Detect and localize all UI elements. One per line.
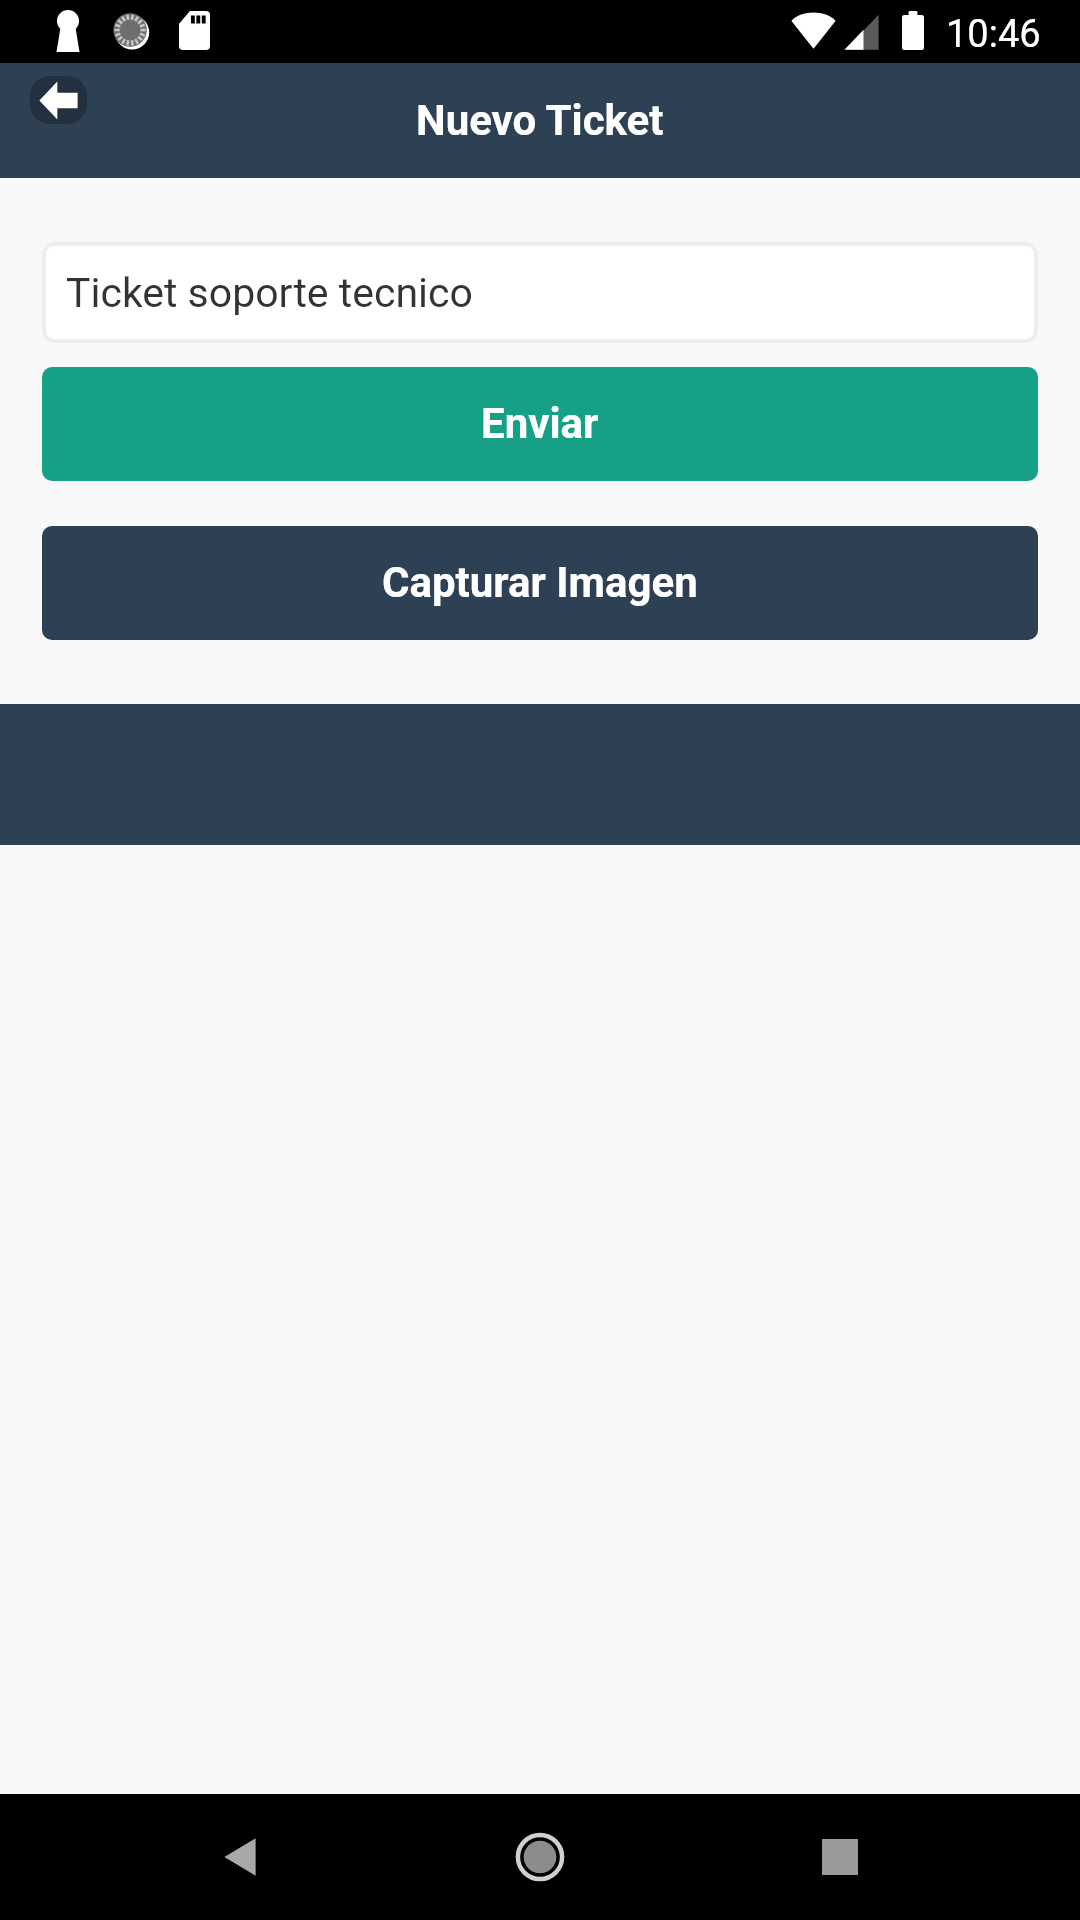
- staticText: Capturar Imagen: [382, 558, 698, 607]
- button[interactable]: Enviar: [42, 367, 1038, 481]
- staticText: 10:46: [946, 12, 1041, 57]
- button[interactable]: Capturar Imagen: [42, 526, 1038, 640]
- button[interactable]: Ticket soporte tecnico: [42, 242, 1038, 343]
- staticText: Ticket soporte tecnico: [66, 269, 473, 317]
- button[interactable]: Back: [200, 1817, 280, 1897]
- button[interactable]: Back: [30, 76, 87, 124]
- button[interactable]: Recents: [800, 1817, 880, 1897]
- staticText: Enviar: [481, 399, 599, 448]
- staticText: Nuevo Ticket: [416, 96, 664, 145]
- button[interactable]: Home: [500, 1817, 580, 1897]
